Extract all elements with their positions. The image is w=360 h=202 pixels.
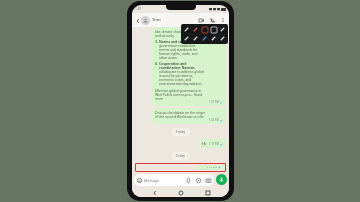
staticText: collaborate to address global [159,69,204,73]
staticText: 1:21 [135,7,142,11]
button[interactable]: Eraser [210,35,217,42]
staticText: Discuss the debate on the origin [155,110,206,114]
staticText: 1:02 PM [209,118,219,122]
staticText: norms and standards for [159,47,198,51]
staticText: 4. [155,61,159,65]
button[interactable]: Hi [200,167,221,168]
button[interactable]: Shape [210,26,217,33]
button[interactable]: Hi [202,141,223,146]
staticText: environmental degradation. [159,81,203,85]
staticText: 3. [155,39,159,43]
staticText: Cooperation and [159,61,187,65]
button[interactable]: Recents [203,188,212,197]
button[interactable]: Back [134,17,141,24]
staticText: and security. [155,33,175,37]
staticText: Hi [202,141,207,146]
staticText: of the second World war on the [155,114,204,118]
staticText: like climate change [155,29,185,33]
staticText: issues like pandemics, [159,73,194,77]
staticText: Welt Politik aims to pro... Read [155,92,202,96]
staticText: more [155,96,164,100]
button[interactable]: Camera [205,177,211,183]
staticText: governance establishes [159,43,196,47]
staticText: 1:23 PM [207,167,217,168]
staticText: 1:01 PM [209,100,219,104]
button[interactable]: like climate change [155,29,223,104]
button[interactable]: Record voice message [216,174,227,185]
button[interactable]: Home [176,188,185,197]
staticText: coordination: Nations [159,65,195,69]
staticText: Friday [176,130,186,134]
button[interactable]: Palette [201,35,208,42]
button[interactable]: Undo [219,35,226,42]
button[interactable]: Message [137,174,211,186]
button[interactable]: Pen [183,26,190,33]
staticText: Today [176,154,185,158]
button[interactable]: Highlighter [192,26,199,33]
button[interactable]: Attach [185,177,191,183]
button[interactable]: Back [150,188,159,197]
staticText: economic crises, and [159,77,192,81]
staticText: Effective global governance in [155,88,202,92]
button[interactable]: Crop [192,35,199,42]
staticText: 1:15 PM [209,142,219,146]
button[interactable]: Arrow [219,26,226,33]
staticText: Message [144,178,185,183]
staticText: other areas. [159,55,178,59]
button[interactable]: Discuss the debate on the origin [155,110,223,122]
staticText: Timi [152,17,197,23]
staticText: Norms and standards: [159,39,196,43]
staticText: human rights, trade, and [159,51,198,55]
button[interactable]: Video call [197,16,205,24]
button[interactable]: Call [208,16,216,24]
button[interactable]: Color [201,26,208,33]
button[interactable]: Voice [195,177,201,183]
button[interactable]: More options [219,16,227,24]
button[interactable]: Text [183,35,190,42]
